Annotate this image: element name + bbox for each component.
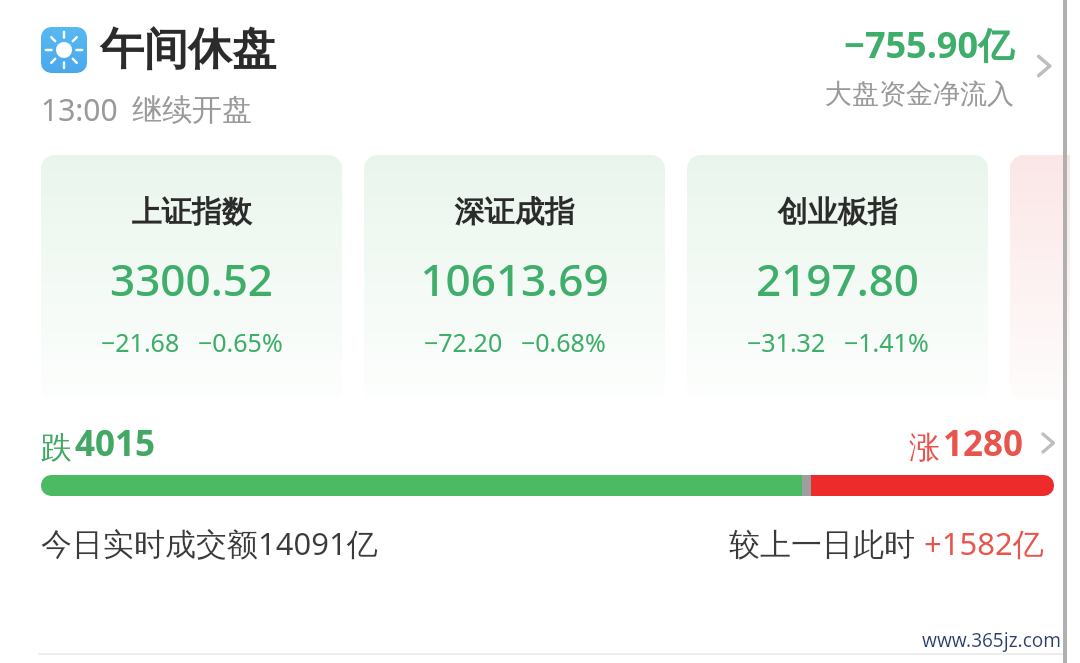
staticText: 涨 bbox=[909, 428, 940, 467]
staticText: −755.90亿 bbox=[844, 20, 1014, 69]
button[interactable]: 跌 bbox=[41, 419, 1072, 467]
staticText: −0.68% bbox=[521, 325, 606, 359]
button[interactable]: 午间休盘 bbox=[41, 22, 825, 130]
staticText: 4015 bbox=[75, 419, 156, 467]
staticText: 1280 bbox=[943, 419, 1024, 467]
button[interactable]: 涨跌家数详情 bbox=[1024, 419, 1072, 467]
staticText: 今日实时成交额14091亿 bbox=[41, 522, 378, 564]
staticText: 上证指数 bbox=[41, 193, 342, 231]
button[interactable] bbox=[1010, 155, 1070, 401]
staticText: 跌 bbox=[41, 428, 72, 467]
staticText: 创业板指 bbox=[687, 193, 988, 231]
staticText: www.365jz.com bbox=[922, 627, 1062, 653]
button[interactable]: 今日实时成交额14091亿 bbox=[41, 522, 1044, 564]
button[interactable]: 创业板指 bbox=[687, 155, 988, 401]
staticText: −72.20 bbox=[424, 325, 503, 359]
staticText: 深证成指 bbox=[364, 193, 665, 231]
staticText: 2197.80 bbox=[687, 249, 988, 309]
staticText: 较上一日此时 bbox=[729, 522, 924, 564]
staticText: −0.65% bbox=[198, 325, 283, 359]
button[interactable] bbox=[41, 475, 1054, 496]
button[interactable]: 上证指数 bbox=[41, 155, 342, 401]
staticText: +1582亿 bbox=[924, 522, 1044, 564]
button[interactable]: 查看大盘资金净流入 bbox=[1018, 40, 1070, 92]
staticText: −21.68 bbox=[101, 325, 180, 359]
staticText: 继续开盘 bbox=[132, 91, 252, 129]
staticText: 10613.69 bbox=[364, 249, 665, 309]
staticText: −31.32 bbox=[747, 325, 826, 359]
button[interactable]: 深证成指 bbox=[364, 155, 665, 401]
staticText: 大盘资金净流入 bbox=[825, 77, 1014, 111]
staticText: 13:00 bbox=[41, 89, 118, 130]
staticText: 午间休盘 bbox=[100, 22, 276, 77]
staticText: 3300.52 bbox=[41, 249, 342, 309]
button[interactable]: −755.90亿 bbox=[825, 20, 1070, 111]
staticText: −1.41% bbox=[844, 325, 929, 359]
